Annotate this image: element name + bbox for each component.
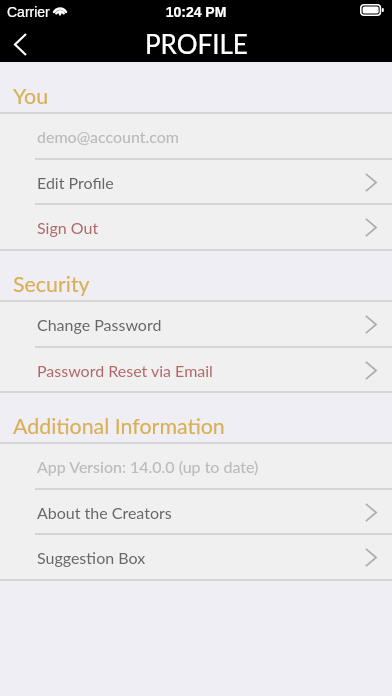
button[interactable]: About the Creators <box>0 489 392 535</box>
staticText: PROFILE <box>145 28 248 59</box>
button[interactable]: Back <box>0 24 40 64</box>
staticText: Additional Information <box>13 413 225 439</box>
button[interactable]: Sign Out <box>0 204 392 250</box>
staticText: Sign Out <box>37 218 365 237</box>
staticText: Carrier <box>7 4 50 20</box>
staticText: About the Creators <box>37 503 365 522</box>
staticText: Security <box>13 271 90 297</box>
button[interactable]: Edit Profile <box>0 159 392 205</box>
staticText: Password Reset via Email <box>37 361 365 380</box>
staticText: demo@account.com <box>37 127 392 146</box>
staticText: App Version: 14.0.0 (up to date) <box>37 457 392 476</box>
staticText: You <box>13 83 49 109</box>
button[interactable]: Change Password <box>0 301 392 347</box>
button[interactable]: Password Reset via Email <box>0 347 392 393</box>
staticText: 10:24 PM <box>0 4 392 20</box>
staticText: Edit Profile <box>37 173 365 192</box>
staticText: Suggestion Box <box>37 548 365 567</box>
button[interactable]: Suggestion Box <box>0 534 392 580</box>
staticText: Change Password <box>37 315 365 334</box>
